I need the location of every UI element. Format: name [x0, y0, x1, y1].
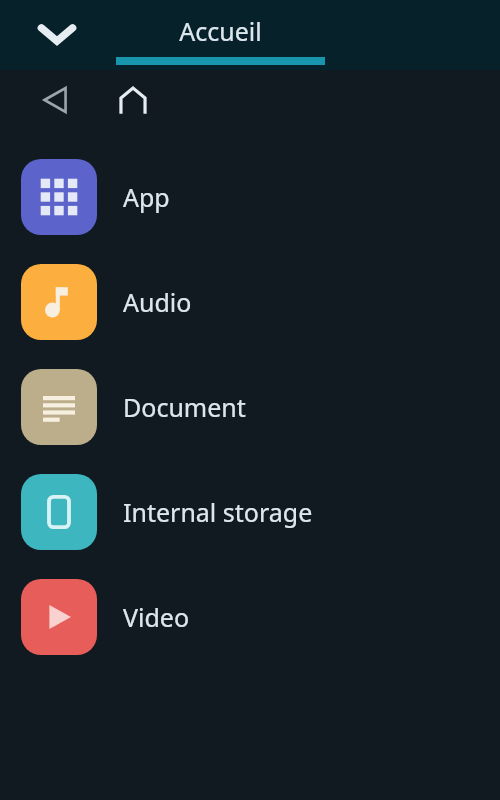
- button[interactable]: Internal storage: [0, 459, 500, 564]
- button[interactable]: Video: [0, 564, 500, 669]
- button[interactable]: Document: [0, 354, 500, 459]
- staticText: Document: [123, 390, 246, 424]
- button[interactable]: Back: [28, 73, 82, 127]
- button[interactable]: Collapse: [26, 4, 88, 66]
- staticText: Video: [123, 600, 190, 634]
- staticText: Internal storage: [123, 495, 313, 529]
- button[interactable]: App: [0, 144, 500, 249]
- button[interactable]: Audio: [0, 249, 500, 354]
- button[interactable]: Home: [106, 73, 160, 127]
- staticText: Audio: [123, 285, 192, 319]
- button[interactable]: Accueil: [116, 0, 325, 70]
- staticText: App: [123, 180, 170, 214]
- staticText: Accueil: [179, 14, 262, 48]
